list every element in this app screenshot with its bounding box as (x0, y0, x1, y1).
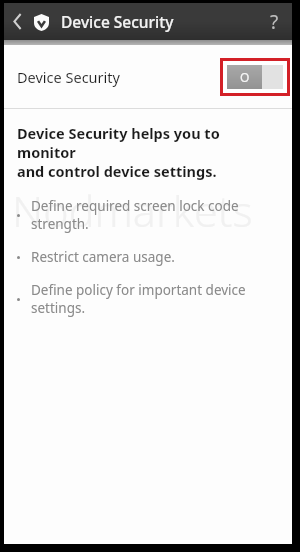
staticText: O (240, 69, 250, 85)
staticText: ? (270, 9, 279, 35)
button[interactable]: Back (4, 3, 30, 40)
other: Device Security (30, 11, 52, 33)
staticText: Device Security (61, 11, 174, 32)
button[interactable]: Device Security toggle, off (227, 65, 283, 89)
staticText: Restrict camera usage. (31, 248, 175, 266)
staticText: Device Security helps you to monitor and… (17, 123, 280, 181)
button[interactable]: Help (256, 3, 292, 40)
staticText: Device Security (17, 67, 120, 87)
button[interactable]: Device Security (4, 45, 292, 108)
staticText: Nodmarkets (12, 181, 253, 240)
staticText: Define policy for important device setti… (31, 281, 280, 317)
staticText: Define required screen lock code strengt… (31, 197, 280, 233)
